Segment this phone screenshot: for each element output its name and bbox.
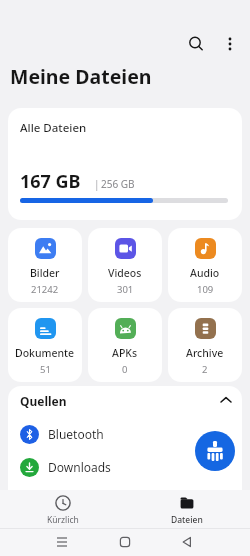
button[interactable]: Downloads [8, 453, 242, 481]
staticText: Dateien [171, 514, 203, 526]
staticText: 51 [40, 363, 51, 376]
staticText: Quellen [20, 393, 67, 409]
staticText: 21242 [31, 283, 59, 296]
button[interactable]: Archive [168, 308, 242, 382]
button[interactable]: Bluetooth [8, 420, 242, 448]
staticText: Bluetooth [48, 426, 104, 442]
staticText: 0 [122, 363, 128, 376]
staticText: 301 [117, 283, 134, 296]
button[interactable]: Videos [88, 228, 162, 302]
staticText: Audio [190, 266, 220, 280]
button[interactable] [187, 35, 205, 53]
staticText: 256 GB [101, 177, 135, 191]
staticText: 167 GB [20, 169, 81, 194]
staticText: Dokumente [15, 346, 75, 360]
button[interactable]: Kürzlich [32, 490, 94, 528]
staticText: 2 [202, 363, 208, 376]
staticText: 109 [197, 283, 214, 296]
staticText: Videos [108, 266, 142, 280]
button[interactable]: Bilder [8, 228, 82, 302]
button[interactable]: Dokumente [8, 308, 82, 382]
button[interactable]: APKs [88, 308, 162, 382]
staticText: | [94, 177, 100, 191]
staticText: Downloads [48, 459, 111, 475]
staticText: Archive [186, 346, 224, 360]
button[interactable]: Audio [168, 228, 242, 302]
staticText: Meine Dateien [10, 63, 152, 90]
staticText: Bilder [30, 266, 60, 280]
button[interactable]: Alle Dateien [8, 108, 242, 220]
button[interactable] [195, 431, 235, 471]
staticText: APKs [112, 346, 138, 360]
button[interactable] [216, 390, 236, 410]
staticText: Alle Dateien [20, 120, 87, 136]
button[interactable] [222, 36, 238, 52]
staticText: Kürzlich [47, 514, 79, 526]
button[interactable]: Dateien [156, 490, 218, 528]
